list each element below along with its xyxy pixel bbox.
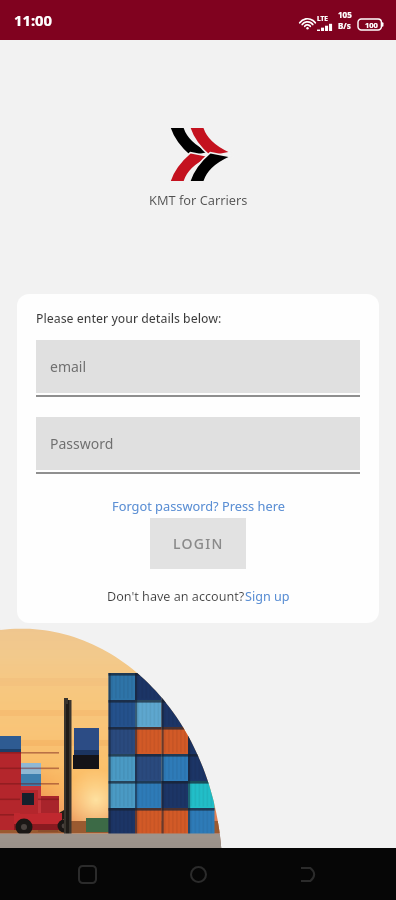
button[interactable]: Forgot password? Press here [112, 497, 285, 514]
staticText: 11:00 [14, 10, 53, 30]
staticText: Please enter your details below: [36, 310, 222, 327]
button[interactable]: Home [174, 850, 222, 898]
staticText: LTE [317, 14, 328, 23]
button[interactable]: LOGIN [150, 518, 246, 569]
staticText: 100 [365, 20, 378, 30]
button[interactable]: Sign up [245, 588, 290, 605]
staticText: Password [50, 434, 114, 453]
staticText: Don't have an account? [107, 588, 245, 605]
button[interactable]: Recent apps [63, 850, 111, 898]
staticText: email [50, 357, 87, 376]
button[interactable]: email [36, 340, 360, 397]
staticText: KMT for Carriers [149, 191, 248, 208]
staticText: 105 [338, 9, 352, 20]
staticText: B/s [338, 20, 351, 31]
staticText: LOGIN [173, 534, 224, 553]
button[interactable]: Password [36, 417, 360, 474]
button[interactable]: Back [285, 850, 333, 898]
